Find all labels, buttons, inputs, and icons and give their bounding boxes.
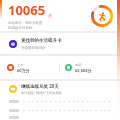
button[interactable]: 继续连续兑奖 20天	[0, 81, 120, 97]
staticText: 已连接今日目标	[8, 26, 33, 30]
staticText: 升级最新版同步	[21, 46, 46, 50]
staticText: 10065	[8, 1, 46, 19]
staticText: 累积	[75, 63, 82, 67]
staticText: 62,602分	[75, 68, 92, 73]
button[interactable]: 10065	[0, 0, 120, 31]
staticText: 查找我的生活提升卡	[21, 38, 62, 44]
staticText: 60万分	[17, 68, 30, 73]
staticText: 上月	[17, 63, 24, 67]
staticText: 运动时长 · 消耗卡路里	[8, 20, 43, 25]
staticText: 累计奖励 · 继续打卡获取奖励	[21, 91, 62, 95]
button[interactable]: 步数进度	[90, 4, 114, 28]
button[interactable]: 累积	[60, 56, 113, 79]
staticText: 继续连续兑奖 20天	[21, 83, 59, 89]
button[interactable]: 上月	[7, 56, 59, 79]
staticText: 步	[48, 13, 52, 18]
button[interactable]: 查找我的生活提升卡	[0, 33, 120, 54]
